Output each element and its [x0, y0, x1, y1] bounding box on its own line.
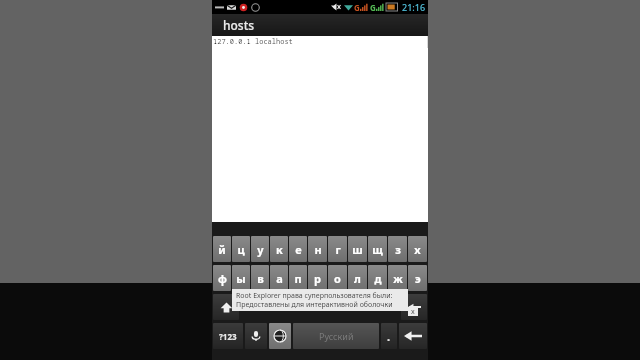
- button[interactable]: н: [308, 236, 327, 262]
- staticText: п: [294, 271, 302, 286]
- staticText: 127.0.0.1 localhost: [213, 37, 293, 47]
- button[interactable]: Close: [408, 307, 418, 316]
- button[interactable]: Shift: [213, 294, 239, 320]
- button[interactable]: а: [270, 265, 288, 291]
- button[interactable]: о: [328, 265, 347, 291]
- staticText: ф: [218, 271, 227, 286]
- staticText: ?123: [219, 331, 237, 342]
- staticText: в: [257, 271, 264, 286]
- staticText: G: [370, 2, 376, 13]
- staticText: р: [314, 271, 321, 286]
- staticText: г: [335, 242, 341, 257]
- button[interactable]: ?123: [213, 323, 243, 349]
- button[interactable]: э: [408, 265, 427, 291]
- button[interactable]: Enter: [399, 323, 427, 349]
- staticText: х: [414, 242, 421, 257]
- staticText: 21:16: [402, 1, 426, 13]
- button[interactable]: ц: [232, 236, 250, 262]
- button[interactable]: ы: [232, 265, 250, 291]
- staticText: ш: [352, 242, 363, 257]
- staticText: а: [276, 271, 283, 286]
- staticText: д: [374, 271, 382, 286]
- staticText: ж: [393, 271, 403, 286]
- button[interactable]: д: [368, 265, 387, 291]
- staticText: Root Explorer права суперпользователя бы…: [236, 291, 404, 309]
- button[interactable]: в: [251, 265, 269, 291]
- button[interactable]: р: [308, 265, 327, 291]
- staticText: к: [276, 242, 283, 257]
- staticText: л: [354, 271, 361, 286]
- staticText: э: [415, 271, 421, 286]
- button[interactable]: .: [381, 323, 397, 349]
- staticText: ц: [237, 242, 245, 257]
- staticText: ы: [236, 271, 246, 286]
- button[interactable]: Voice input: [245, 323, 267, 349]
- staticText: е: [295, 242, 302, 257]
- staticText: .: [387, 329, 391, 344]
- staticText: x: [411, 307, 415, 316]
- button[interactable]: Root Explorer права суперпользователя бы…: [232, 289, 408, 311]
- button[interactable]: й: [213, 236, 231, 262]
- staticText: н: [314, 242, 322, 257]
- button[interactable]: hosts: [212, 14, 428, 36]
- button[interactable]: Русский: [293, 323, 379, 349]
- button[interactable]: х: [408, 236, 427, 262]
- staticText: hosts: [223, 17, 255, 33]
- staticText: з: [395, 242, 401, 257]
- staticText: щ: [372, 242, 383, 257]
- staticText: Русский: [319, 330, 354, 342]
- button[interactable]: е: [289, 236, 307, 262]
- button[interactable]: Change language: [269, 323, 291, 349]
- button[interactable]: з: [388, 236, 407, 262]
- button[interactable]: ф: [213, 265, 231, 291]
- staticText: у: [257, 242, 264, 257]
- button[interactable]: у: [251, 236, 269, 262]
- staticText: G: [354, 2, 360, 13]
- button[interactable]: Backspace: [401, 294, 427, 320]
- button[interactable]: п: [289, 265, 307, 291]
- button[interactable]: ш: [348, 236, 367, 262]
- button[interactable]: ж: [388, 265, 407, 291]
- staticText: й: [218, 242, 226, 257]
- button[interactable]: к: [270, 236, 288, 262]
- staticText: о: [334, 271, 341, 286]
- button[interactable]: щ: [368, 236, 387, 262]
- button[interactable]: г: [328, 236, 347, 262]
- button[interactable]: л: [348, 265, 367, 291]
